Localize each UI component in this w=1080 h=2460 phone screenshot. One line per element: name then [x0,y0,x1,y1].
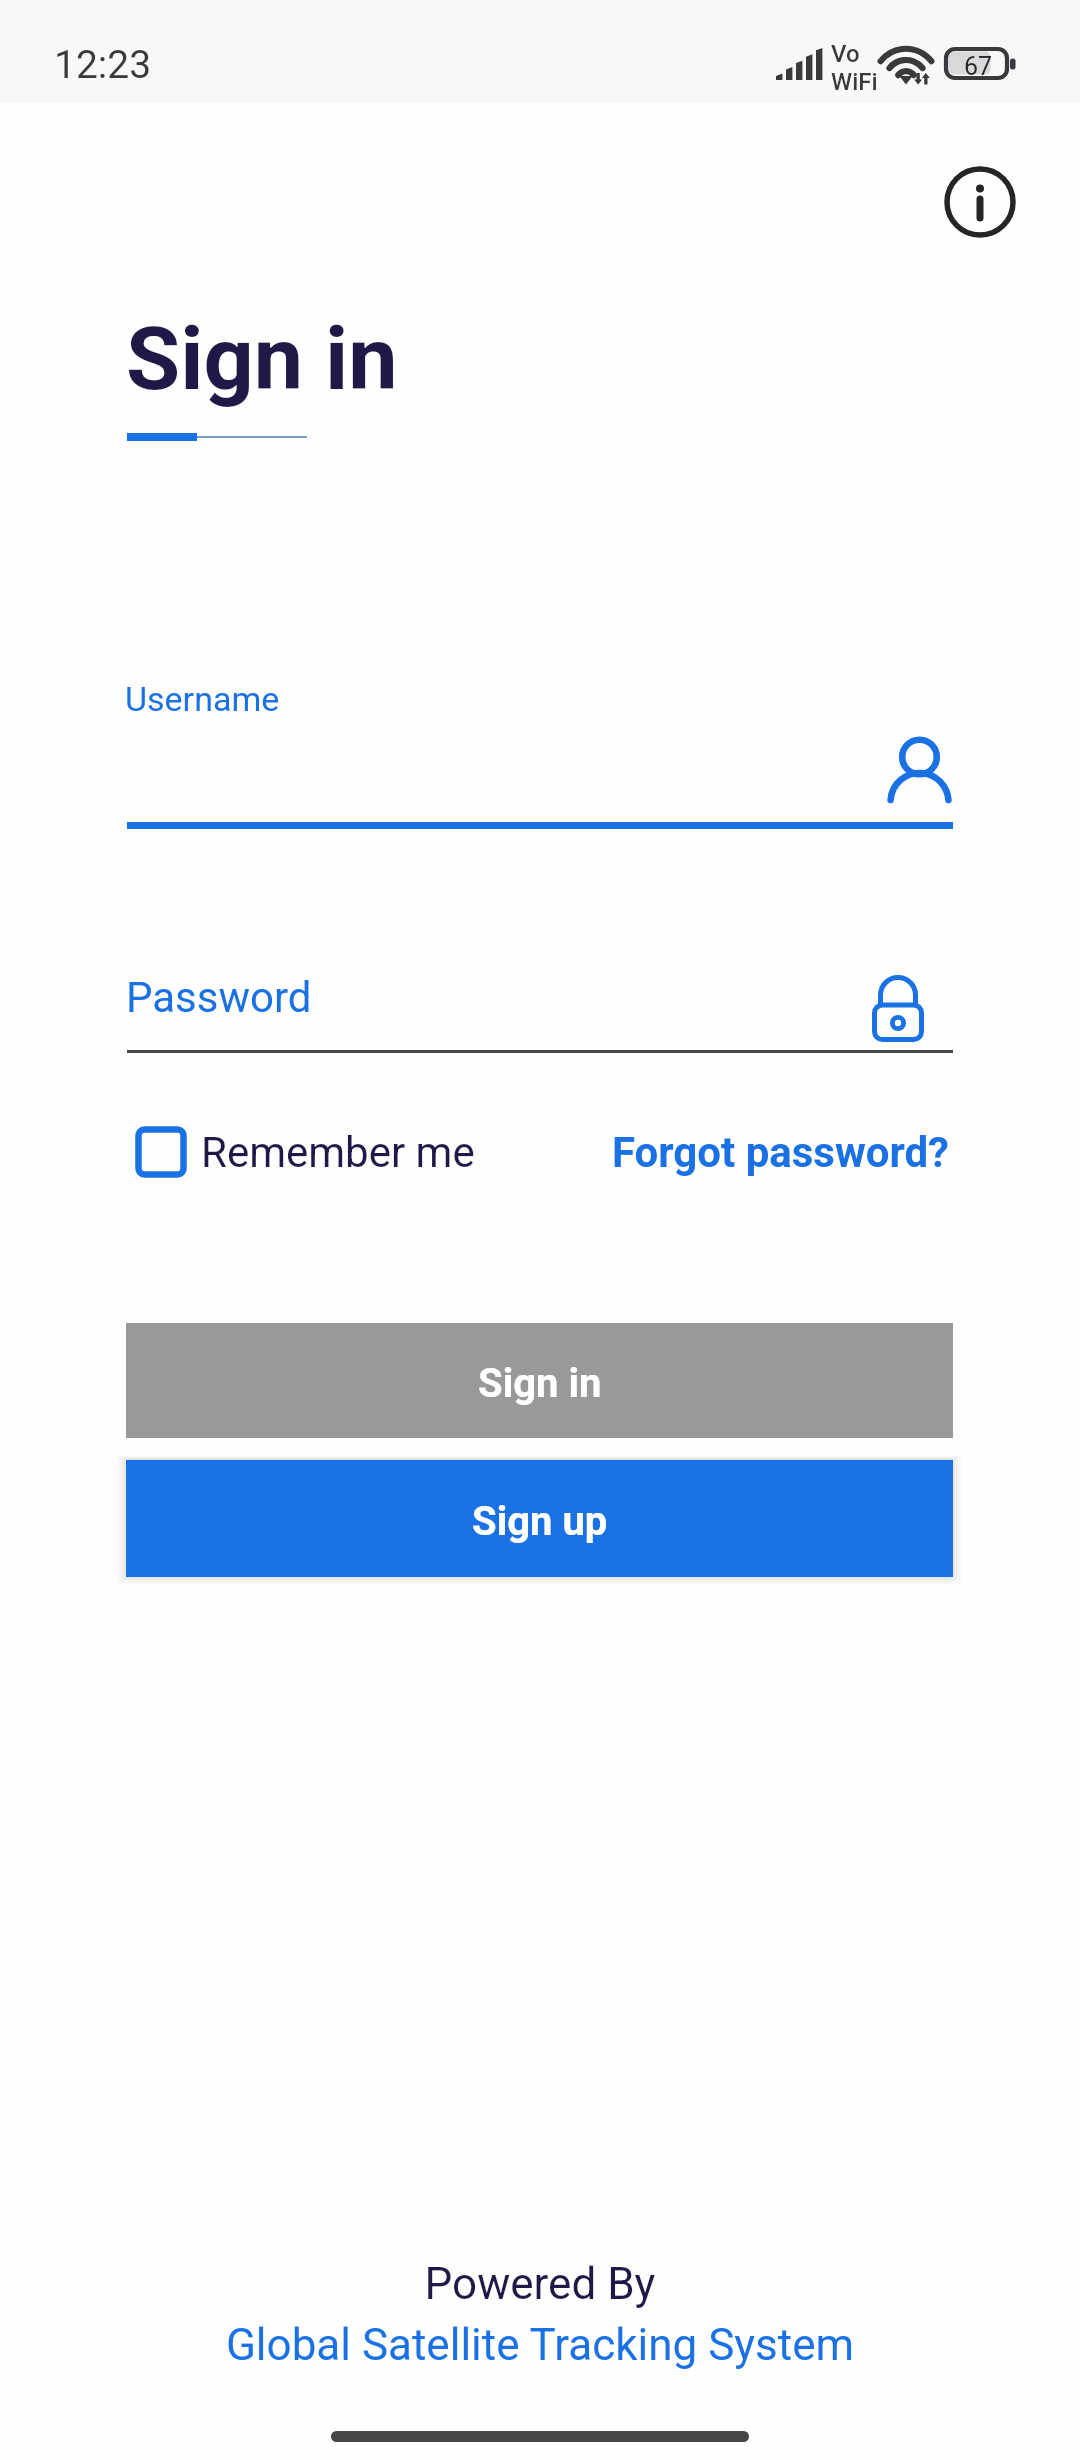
staticText: Remember me [201,1128,475,1177]
staticText: Sign up [472,1498,608,1545]
staticText: Sign in [478,1360,602,1407]
button[interactable]: Sign up [126,1460,953,1577]
staticText: Sign in [126,307,398,410]
button[interactable]: Information [933,155,1027,249]
staticText: 12:23 [54,42,152,88]
staticText: Forgot password? [612,1128,950,1177]
staticText: Powered By [0,2258,1080,2310]
staticText: Password [126,973,312,1022]
button[interactable]: Sign in [126,1323,953,1438]
staticText: Global Satellite Tracking System [0,2319,1080,2371]
button[interactable]: Remember me [126,1118,483,1186]
staticText: Username [125,679,280,719]
staticText: WiFi [831,68,878,96]
staticText: Vo [831,40,860,68]
staticText: 67 [964,52,993,81]
button[interactable]: Forgot password? [608,1122,954,1183]
